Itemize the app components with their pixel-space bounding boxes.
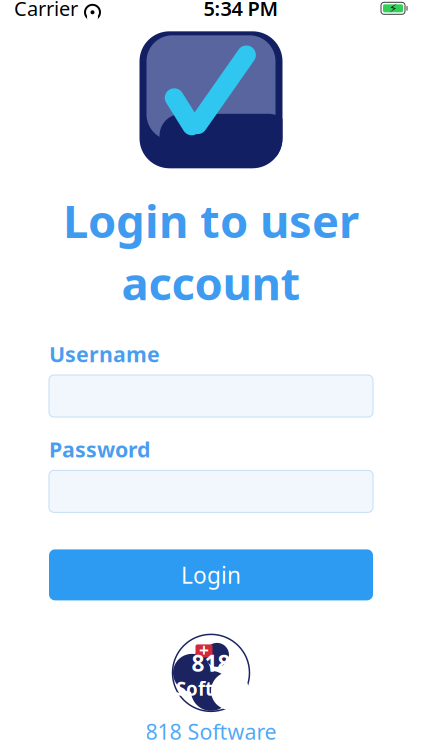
staticText: 818 Software (145, 717, 276, 746)
staticText: Login to user (63, 190, 359, 250)
button[interactable]: 818 Software (145, 634, 276, 746)
staticText: Login (181, 560, 241, 590)
staticText: 818 (191, 648, 230, 678)
staticText: + (199, 638, 209, 661)
staticText: Username (49, 340, 160, 368)
button[interactable]: Login (49, 549, 373, 600)
staticText: Carrier (14, 0, 78, 22)
staticText: account (121, 252, 300, 313)
staticText: Password (49, 435, 150, 463)
staticText: Software (176, 676, 246, 726)
staticText: ⚡︎ (389, 1, 397, 15)
staticText: 5:34 PM (203, 0, 278, 22)
